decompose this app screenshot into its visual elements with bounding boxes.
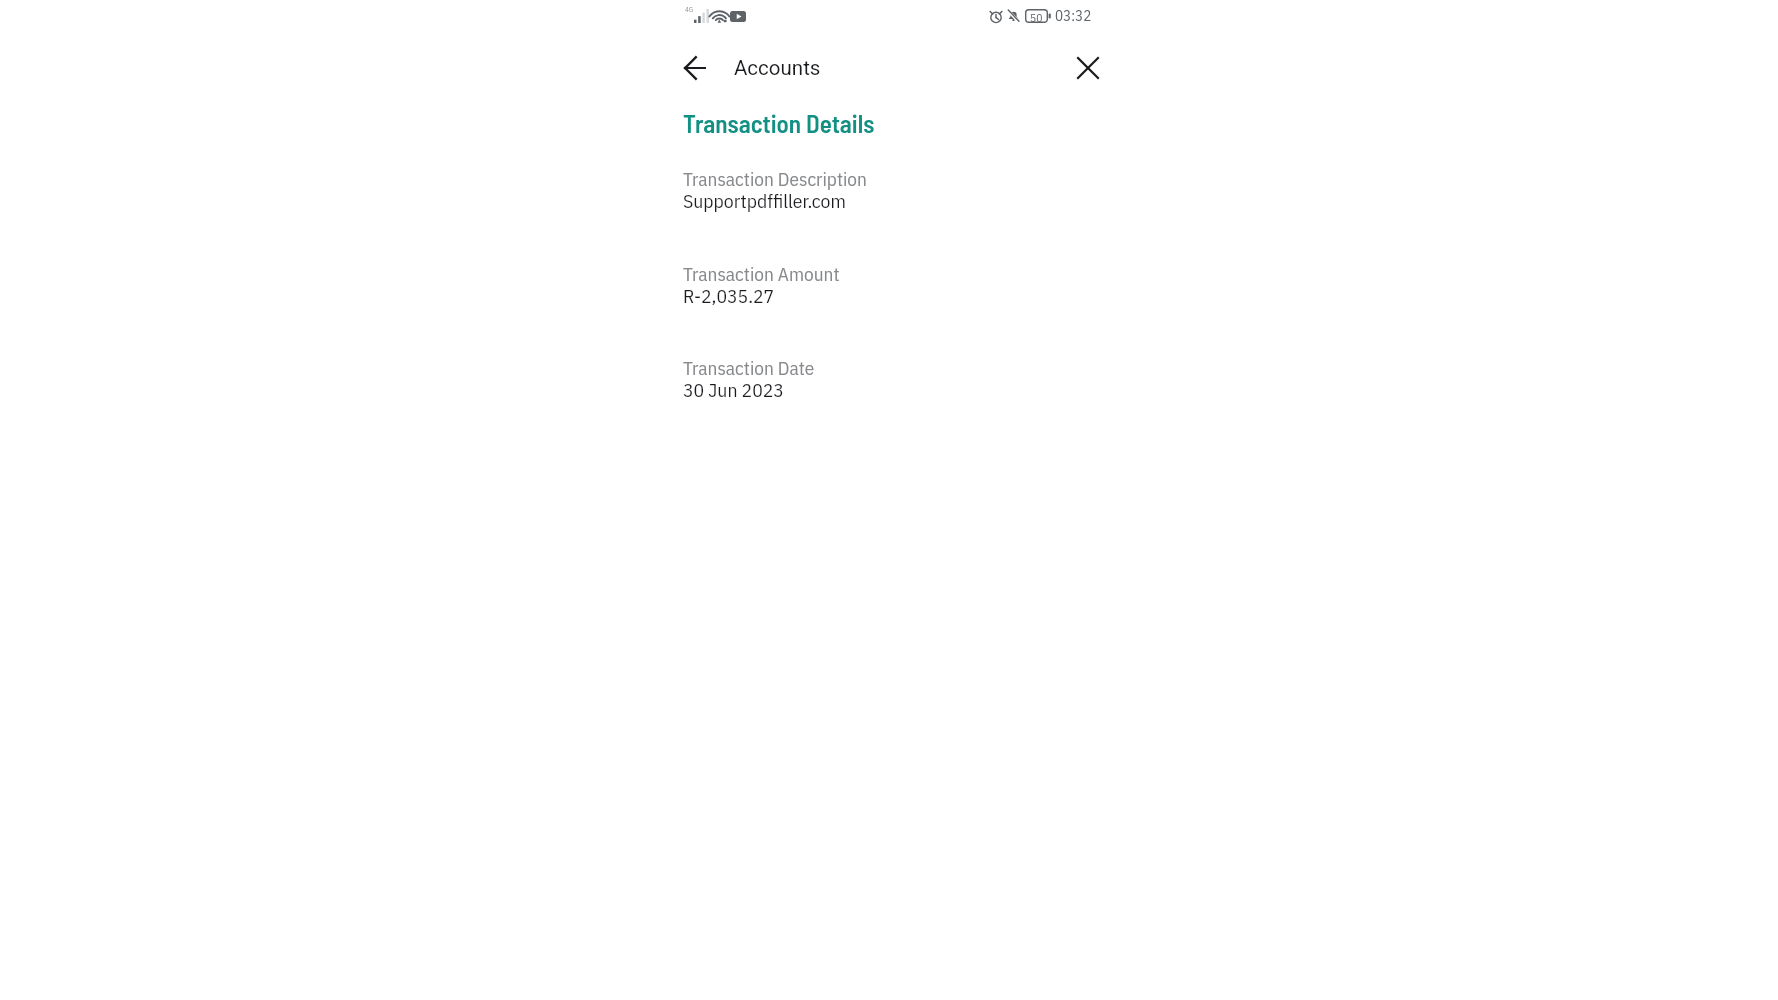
staticText: 4G — [685, 5, 694, 14]
staticText: 03:32 — [1055, 6, 1092, 26]
staticText: 30 Jun 2023 — [683, 377, 784, 402]
staticText: Transaction Details — [683, 108, 875, 138]
staticText: Transaction Date — [683, 355, 815, 380]
staticText: Accounts — [734, 56, 821, 80]
staticText: Supportpdffiller.com — [683, 188, 846, 213]
staticText: Transaction Description — [683, 166, 867, 191]
button[interactable]: Close — [1066, 46, 1110, 90]
staticText: R-2,035.27 — [683, 283, 775, 308]
staticText: 50 — [1030, 10, 1043, 25]
button[interactable]: Back — [673, 46, 717, 90]
staticText: Transaction Amount — [683, 261, 840, 286]
